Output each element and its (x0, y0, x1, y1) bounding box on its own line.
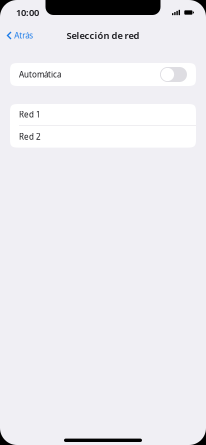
staticText: Red 2 (19, 131, 41, 142)
staticText: Selección de red (66, 29, 139, 42)
staticText: 10:00 (16, 6, 39, 19)
button[interactable]: Red 1 (10, 104, 196, 125)
button[interactable]: Atrás (0, 26, 39, 45)
staticText: Red 1 (19, 109, 41, 120)
button[interactable]: Red 2 (10, 126, 196, 148)
button[interactable]: Automática (10, 63, 196, 86)
staticText: Automática (19, 69, 61, 80)
staticText: Atrás (14, 30, 33, 41)
